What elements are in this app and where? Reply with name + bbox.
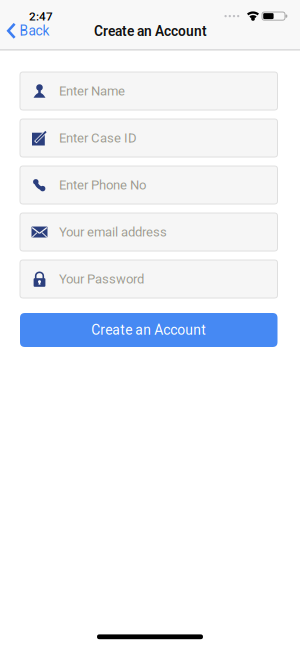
staticText: Create an Account: [94, 23, 207, 39]
textField[interactable]: Enter Case ID: [59, 130, 264, 146]
button[interactable]: Create an Account: [20, 313, 277, 347]
textField[interactable]: Enter Name: [59, 83, 264, 99]
staticText: Create an Account: [91, 322, 206, 338]
staticText: Back: [20, 23, 50, 39]
textField[interactable]: Enter Phone No: [59, 177, 264, 193]
staticText: Your email address: [59, 224, 167, 240]
staticText: Enter Phone No: [59, 177, 146, 193]
button[interactable]: Back: [7, 23, 50, 39]
staticText: 2:47: [29, 9, 53, 23]
textField[interactable]: Your email address: [59, 224, 264, 240]
staticText: Your Password: [59, 271, 144, 287]
textField[interactable]: Your Password: [59, 271, 264, 287]
staticText: Enter Case ID: [59, 130, 137, 146]
staticText: Enter Name: [59, 83, 125, 99]
